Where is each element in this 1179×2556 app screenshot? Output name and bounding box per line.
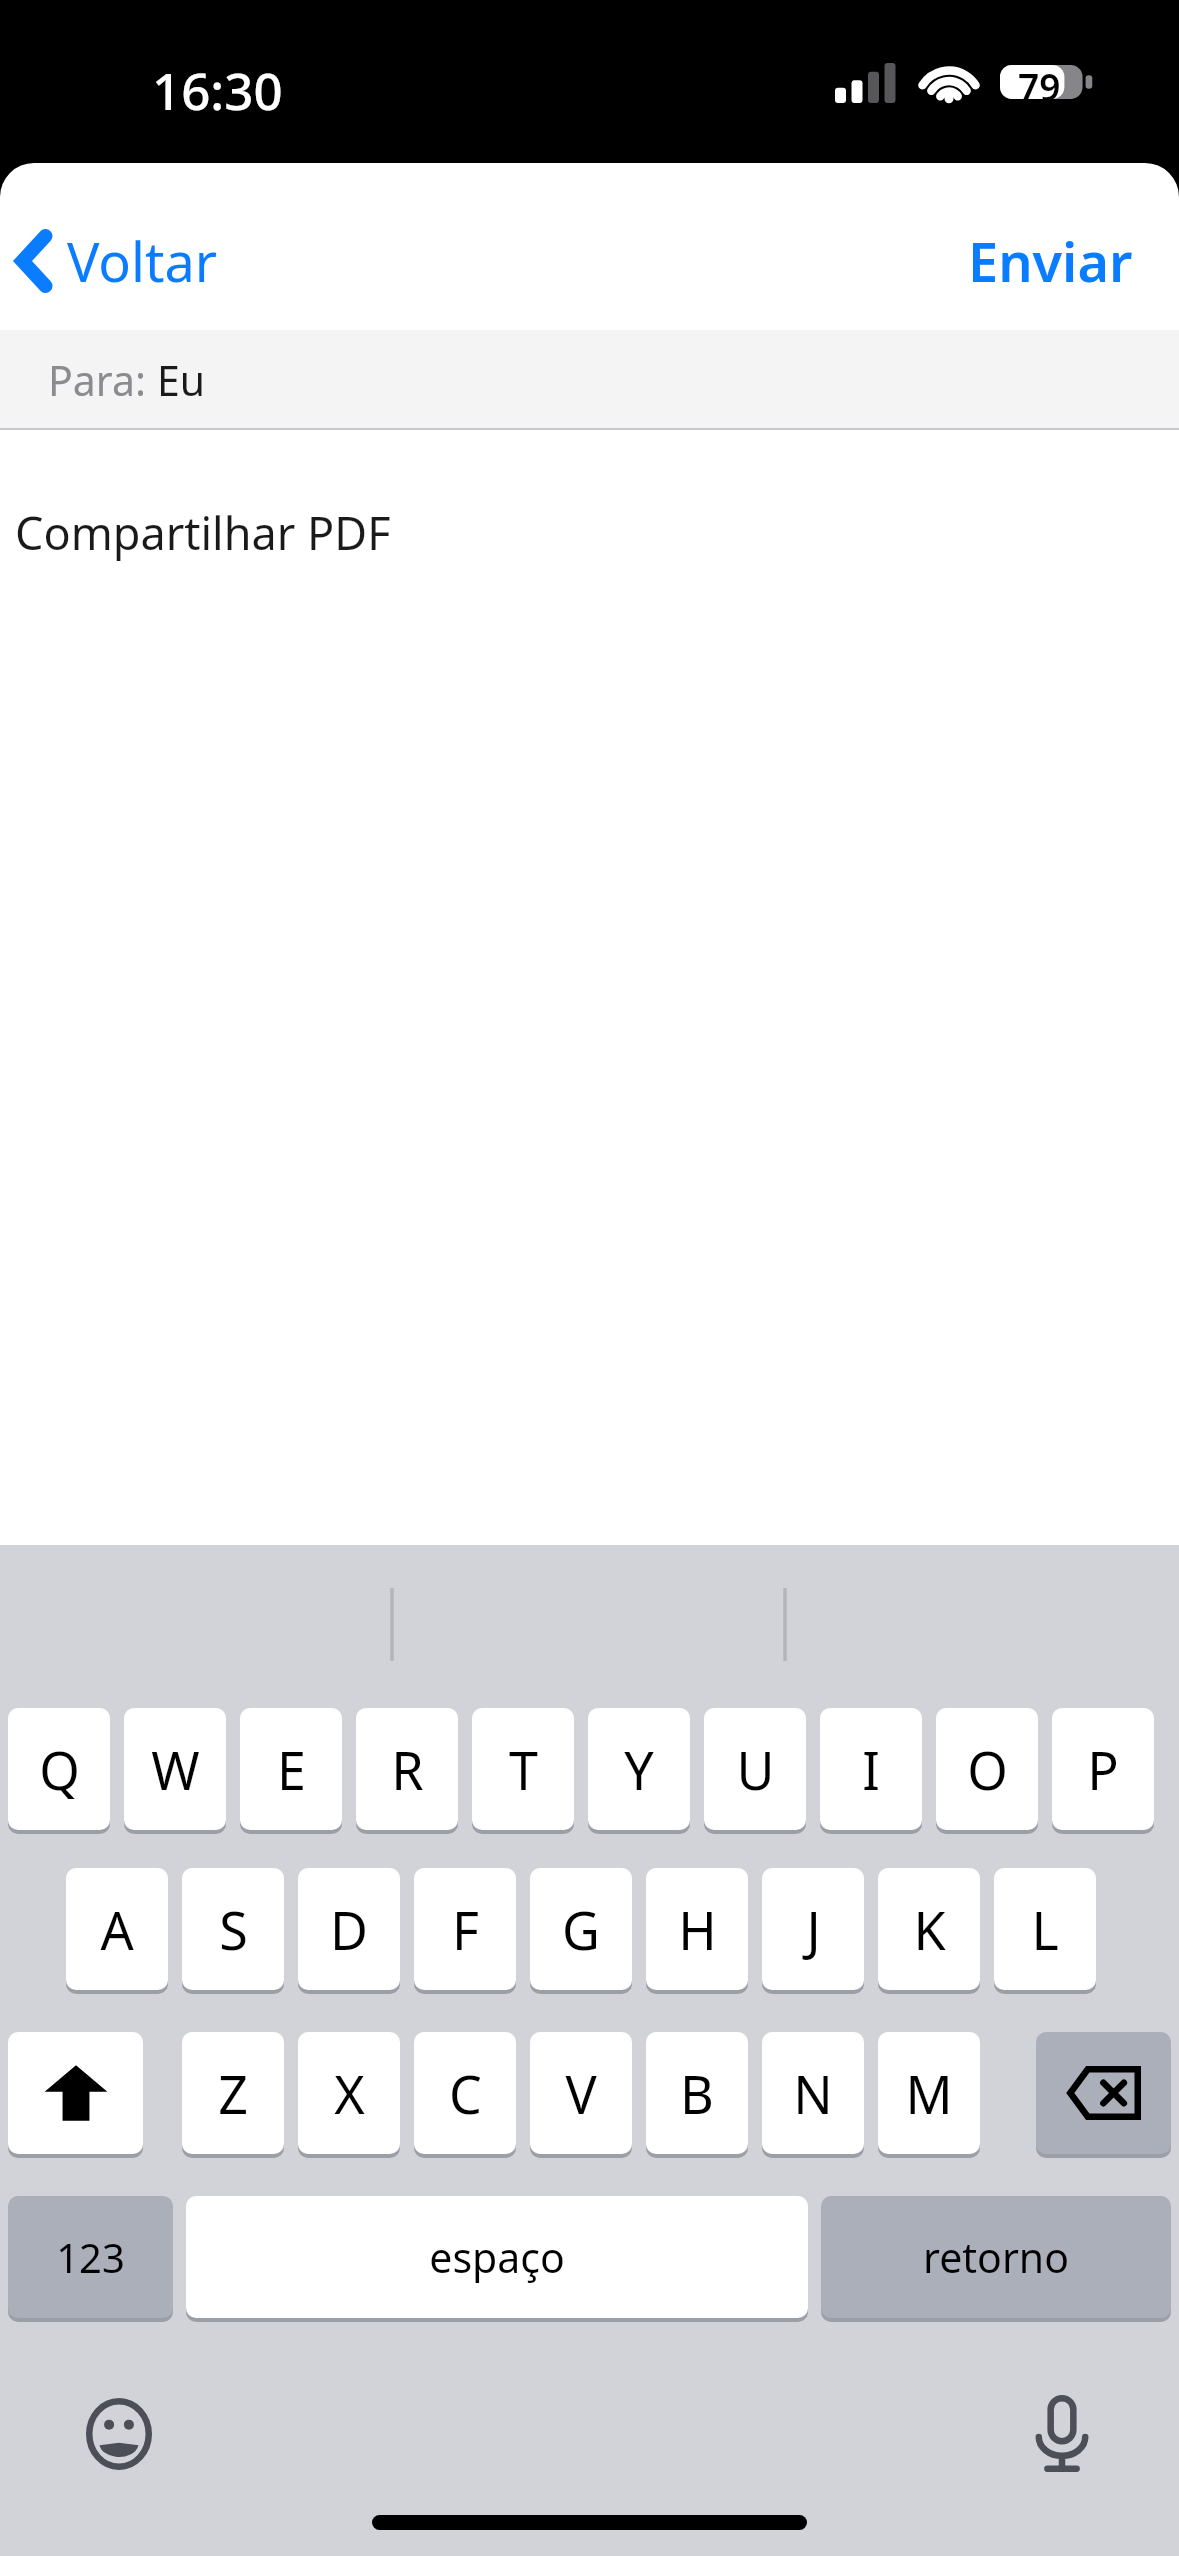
button[interactable]: H xyxy=(646,1868,748,1990)
button[interactable]: U xyxy=(704,1708,806,1830)
button[interactable]: G xyxy=(530,1868,632,1990)
button[interactable]: O xyxy=(936,1708,1038,1830)
staticText: C xyxy=(449,2058,482,2129)
staticText: X xyxy=(334,2058,365,2129)
button[interactable]: P xyxy=(1052,1708,1154,1830)
staticText: Z xyxy=(218,2058,248,2129)
staticText: T xyxy=(509,1734,538,1805)
staticText: 16:30 xyxy=(152,55,283,124)
staticText: Voltar xyxy=(67,224,218,298)
button[interactable]: B xyxy=(646,2032,748,2154)
staticText: G xyxy=(562,1894,600,1965)
staticText: Compartilhar PDF xyxy=(15,502,391,563)
button[interactable]: Dictation xyxy=(1018,2388,1106,2480)
button[interactable]: L xyxy=(994,1868,1096,1990)
staticText: J xyxy=(806,1894,821,1965)
staticText: W xyxy=(151,1734,200,1805)
staticText: Enviar xyxy=(968,224,1133,298)
staticText: O xyxy=(967,1734,1008,1805)
staticText: P xyxy=(1087,1734,1119,1805)
button[interactable]: E xyxy=(240,1708,342,1830)
staticText: D xyxy=(330,1894,368,1965)
staticText: F xyxy=(452,1894,479,1965)
button[interactable]: C xyxy=(414,2032,516,2154)
button[interactable]: I xyxy=(820,1708,922,1830)
staticText: K xyxy=(913,1894,946,1965)
button[interactable]: N xyxy=(762,2032,864,2154)
staticText: I xyxy=(862,1734,880,1805)
staticText: 79 xyxy=(1018,61,1061,111)
button[interactable]: Z xyxy=(182,2032,284,2154)
staticText: M xyxy=(905,2058,953,2129)
button[interactable]: W xyxy=(124,1708,226,1830)
staticText: E xyxy=(277,1734,306,1805)
button[interactable]: Para: xyxy=(0,330,1179,430)
button[interactable]: M xyxy=(878,2032,980,2154)
button[interactable]: retorno xyxy=(821,2196,1171,2318)
staticText: R xyxy=(391,1734,424,1805)
staticText: A xyxy=(100,1894,134,1965)
staticText: V xyxy=(565,2058,597,2129)
button[interactable]: Enviar xyxy=(922,209,1179,313)
button[interactable]: Shift xyxy=(8,2032,143,2154)
staticText: L xyxy=(1031,1894,1059,1965)
button[interactable]: Backspace xyxy=(1036,2032,1171,2154)
staticText: retorno xyxy=(923,2229,1069,2285)
staticText: Eu xyxy=(157,352,206,408)
staticText: Para: xyxy=(48,352,157,408)
button[interactable]: K xyxy=(878,1868,980,1990)
button[interactable]: Compartilhar PDF xyxy=(0,430,1179,1545)
button[interactable]: 123 xyxy=(8,2196,173,2318)
button[interactable]: Voltar xyxy=(0,209,238,313)
button[interactable]: D xyxy=(298,1868,400,1990)
button[interactable]: Y xyxy=(588,1708,690,1830)
button[interactable]: R xyxy=(356,1708,458,1830)
button[interactable]: Emoji keyboard xyxy=(78,2393,160,2475)
staticText: S xyxy=(219,1894,248,1965)
button[interactable]: Q xyxy=(8,1708,110,1830)
staticText: espaço xyxy=(429,2229,565,2285)
button[interactable]: V xyxy=(530,2032,632,2154)
staticText: B xyxy=(680,2058,714,2129)
staticText: H xyxy=(678,1894,717,1965)
button[interactable]: espaço xyxy=(186,2196,808,2318)
staticText: N xyxy=(793,2058,833,2129)
staticText: 123 xyxy=(56,2230,125,2284)
button[interactable]: J xyxy=(762,1868,864,1990)
button[interactable]: S xyxy=(182,1868,284,1990)
staticText: Y xyxy=(624,1734,654,1805)
button[interactable]: T xyxy=(472,1708,574,1830)
button[interactable]: A xyxy=(66,1868,168,1990)
staticText: U xyxy=(736,1734,775,1805)
staticText: Q xyxy=(39,1734,80,1805)
button[interactable]: F xyxy=(414,1868,516,1990)
button[interactable]: X xyxy=(298,2032,400,2154)
